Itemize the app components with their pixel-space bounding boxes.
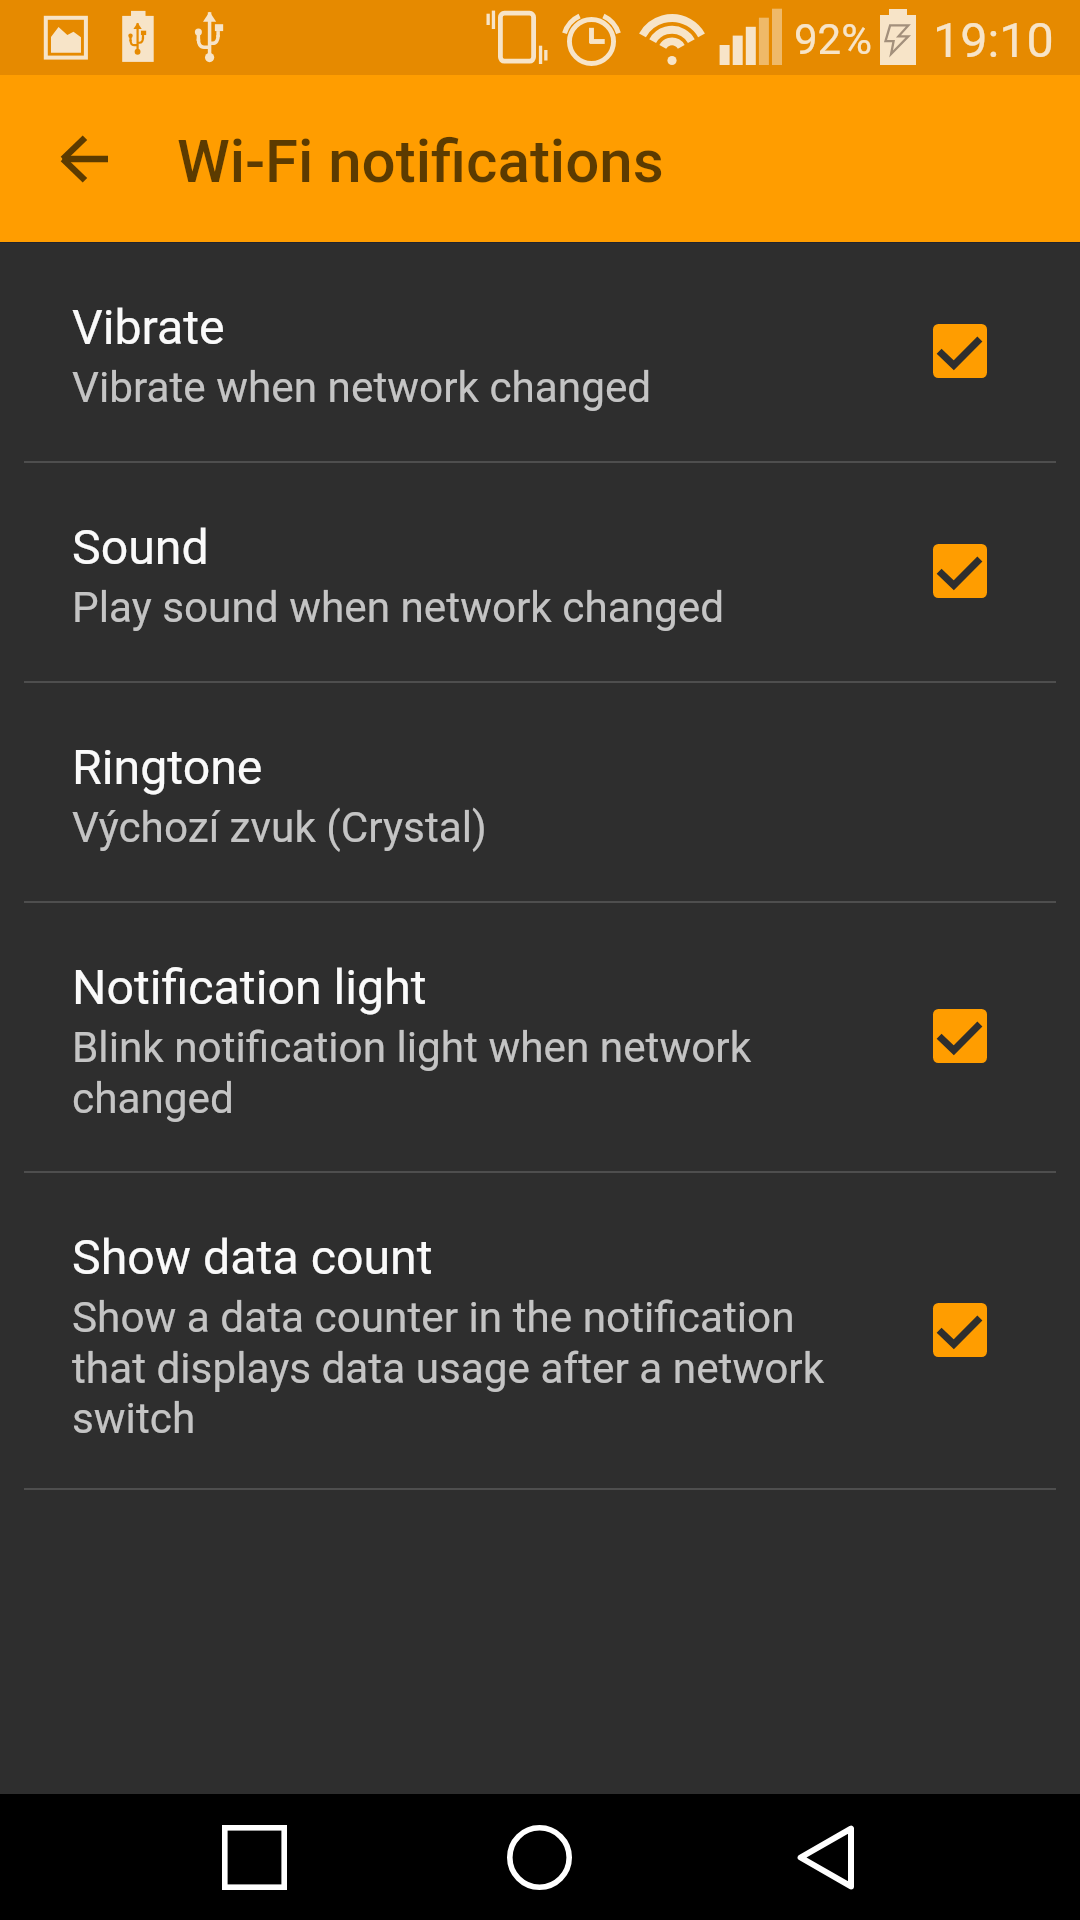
button[interactable]: Ringtone <box>0 683 1080 901</box>
staticText: Show data count <box>72 1229 433 1286</box>
staticText: Vibrate when network changed <box>72 363 652 413</box>
staticText: 92% <box>794 15 872 64</box>
staticText: Show a data counter in the notification … <box>72 1293 852 1443</box>
button[interactable]: Navigate up <box>0 75 168 243</box>
staticText: Notification light <box>72 959 427 1016</box>
staticText: 19:10 <box>933 12 1054 69</box>
button[interactable]: Notification light <box>0 903 1080 1171</box>
button[interactable]: Vibrate <box>0 243 1080 461</box>
staticText: Vibrate <box>72 299 225 356</box>
button[interactable]: Home <box>425 1794 653 1920</box>
button[interactable]: Show data count <box>933 1303 987 1357</box>
staticText: Play sound when network changed <box>72 583 725 633</box>
staticText: Sound <box>72 519 209 576</box>
staticText: Ringtone <box>72 739 263 796</box>
button[interactable]: Back <box>711 1794 939 1920</box>
staticText: Blink notification light when network ch… <box>72 1023 852 1123</box>
staticText: Výchozí zvuk (Crystal) <box>72 803 487 853</box>
staticText: Wi-Fi notifications <box>177 126 664 196</box>
button[interactable]: Notification light <box>933 1009 987 1063</box>
button[interactable]: Recent apps <box>140 1794 368 1920</box>
button[interactable]: Show data count <box>0 1173 1080 1488</box>
button[interactable]: Vibrate <box>933 324 987 378</box>
button[interactable]: Sound <box>0 463 1080 681</box>
button[interactable]: Sound <box>933 544 987 598</box>
